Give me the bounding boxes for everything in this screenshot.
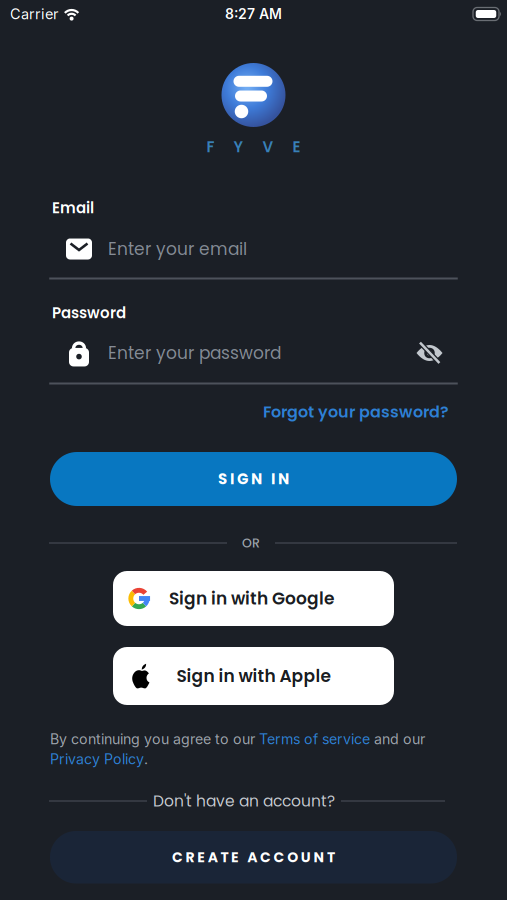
staticText: . [144, 750, 148, 768]
staticText: Terms of service [259, 730, 370, 748]
button[interactable]: Forgot your password? [263, 401, 449, 423]
staticText: Don't have an account? [153, 790, 335, 812]
button[interactable]: Enter your email [0, 234, 507, 264]
staticText: Password [52, 302, 126, 323]
staticText: OR [242, 534, 260, 552]
button[interactable]: Sign in with Apple [113, 647, 394, 705]
staticText: Sign in with Apple [176, 664, 330, 688]
button[interactable]: SIGN IN [50, 452, 457, 506]
staticText: CREATE ACCOUNT [172, 847, 335, 867]
staticText: Carrier [10, 5, 58, 23]
button[interactable]: Sign in with Google [113, 571, 394, 626]
staticText: Email [52, 197, 94, 218]
button[interactable]: Privacy Policy [50, 750, 144, 768]
staticText: Enter your email [108, 237, 247, 261]
staticText: Privacy Policy [50, 750, 144, 768]
button[interactable]: CREATE ACCOUNT [50, 831, 457, 883]
button[interactable] [416, 342, 443, 364]
staticText: F Y V E [206, 136, 300, 157]
staticText: By continuing you agree to our [50, 730, 259, 748]
staticText: Enter your password [108, 341, 281, 365]
staticText: and our [370, 730, 425, 748]
button[interactable]: Enter your password [0, 338, 507, 368]
staticText: SIGN IN [218, 468, 289, 489]
staticText: Forgot your password? [263, 401, 449, 423]
button[interactable]: Terms of service [259, 730, 370, 748]
staticText: 8:27 AM [225, 5, 282, 22]
staticText: Sign in with Google [169, 587, 334, 610]
